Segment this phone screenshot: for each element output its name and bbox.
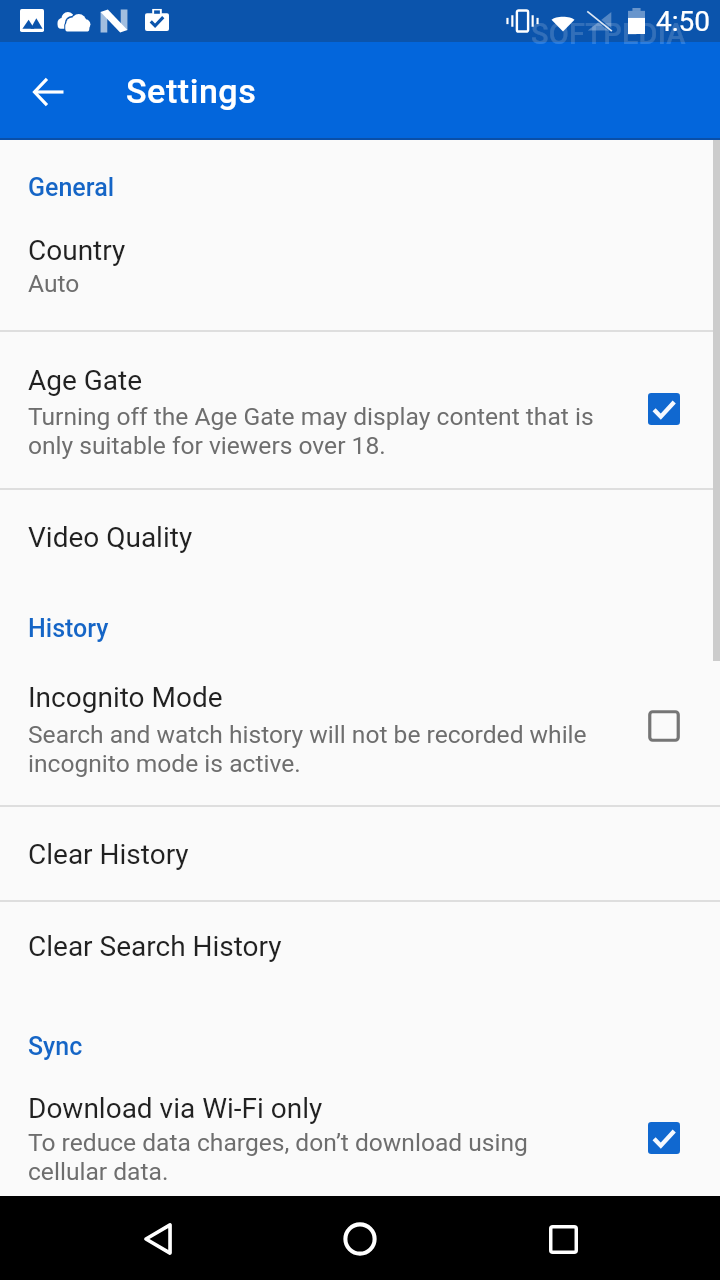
staticText: Age Gate <box>28 364 143 397</box>
staticText: General <box>28 173 115 202</box>
staticText: Clear Search History <box>28 930 282 963</box>
button[interactable]: Navigate up <box>19 70 77 114</box>
staticText: Sync <box>28 1032 83 1061</box>
staticText: Turning off the Age Gate may display con… <box>28 402 594 460</box>
button[interactable]: Age Gate, checked <box>634 379 694 439</box>
button[interactable]: Age Gate <box>0 331 720 488</box>
staticText: Video Quality <box>28 521 193 554</box>
staticText: Settings <box>126 71 257 111</box>
button[interactable]: Country <box>0 139 720 330</box>
button[interactable]: Back <box>116 1196 200 1280</box>
staticText: Search and watch history will not be rec… <box>28 720 587 778</box>
button[interactable]: Incognito Mode, unchecked <box>634 696 694 756</box>
staticText: To reduce data charges, don’t download u… <box>28 1128 528 1186</box>
button[interactable]: Clear History <box>0 806 720 900</box>
staticText: Country <box>28 234 126 267</box>
staticText: Incognito Mode <box>28 681 223 714</box>
staticText: History <box>28 614 109 643</box>
staticText: 4:50 <box>656 5 710 38</box>
button[interactable]: Recent apps <box>521 1196 605 1280</box>
button[interactable]: Home <box>318 1196 402 1280</box>
staticText: Auto <box>28 269 80 298</box>
staticText: Download via Wi-Fi only <box>28 1092 323 1125</box>
button[interactable]: Download via Wi-Fi only, checked <box>634 1108 694 1168</box>
staticText: SOFTPEDIA <box>531 17 686 51</box>
button[interactable]: Download via Wi-Fi only <box>0 1020 720 1196</box>
button[interactable]: Clear Search History <box>0 901 720 995</box>
button[interactable]: Incognito Mode <box>0 650 720 805</box>
staticText: Clear History <box>28 838 189 871</box>
button[interactable]: Video Quality <box>0 489 720 580</box>
